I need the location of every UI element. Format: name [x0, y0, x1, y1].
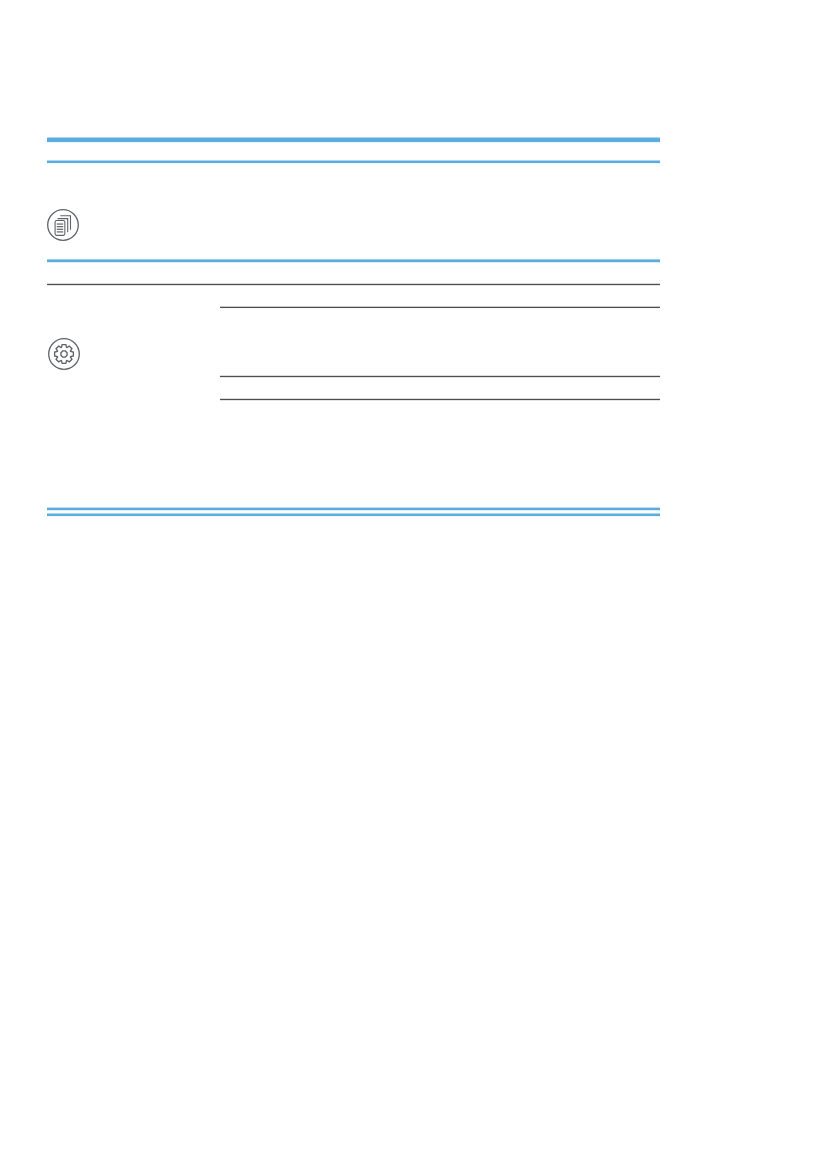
button[interactable]: Settings row 1 [47, 262, 660, 284]
button[interactable]: Settings row 2 [220, 285, 660, 307]
button[interactable]: Settings row 3 [220, 308, 660, 376]
button[interactable]: Settings [48, 338, 80, 370]
button[interactable]: Copy documents [47, 209, 79, 241]
button[interactable]: Documents header [47, 142, 660, 160]
button[interactable]: Settings row 4 [220, 377, 660, 399]
